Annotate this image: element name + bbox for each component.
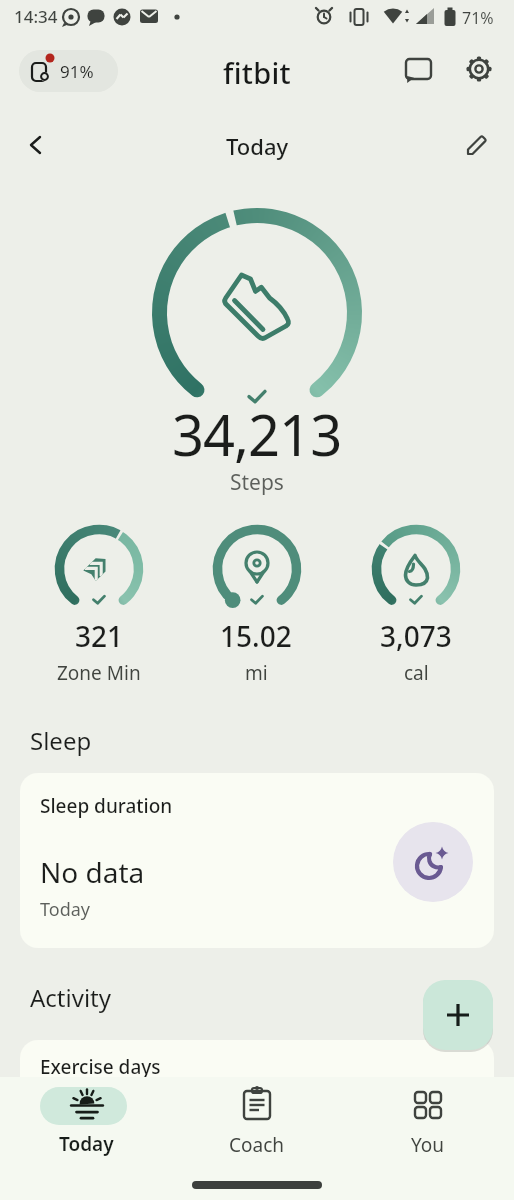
staticText: You (411, 1132, 445, 1158)
staticText: 34,213 (172, 396, 342, 472)
staticText: 15.02 (220, 617, 292, 655)
button[interactable] (462, 130, 492, 160)
staticText: 3,073 (380, 617, 452, 655)
button[interactable] (393, 822, 473, 902)
staticText: Sleep (30, 724, 92, 757)
staticText: Zone Min (57, 660, 141, 686)
button[interactable] (22, 131, 50, 159)
staticText: mi (245, 660, 268, 686)
button[interactable] (40, 1087, 132, 1167)
staticText: 14:34 (14, 5, 58, 28)
button[interactable] (460, 52, 498, 90)
staticText: 321 (75, 617, 124, 655)
button[interactable] (211, 1077, 303, 1163)
button[interactable] (382, 1077, 474, 1163)
staticText: No data (40, 853, 145, 891)
staticText: 91% (60, 60, 94, 83)
staticText: Steps (230, 468, 284, 497)
staticText: Coach (229, 1132, 285, 1158)
button[interactable] (399, 52, 437, 90)
button[interactable]: 91% (19, 50, 118, 92)
staticText: Today (59, 1131, 114, 1157)
staticText: Today (226, 131, 289, 161)
button[interactable] (423, 980, 493, 1050)
button[interactable]: Sleep duration (20, 773, 494, 948)
staticText: Sleep duration (40, 793, 173, 819)
staticText: 71% (462, 7, 494, 29)
button[interactable]: Exercise days (20, 1040, 494, 1090)
staticText: cal (404, 660, 429, 686)
staticText: Activity (30, 981, 111, 1014)
staticText: fitbit (223, 53, 292, 92)
staticText: Exercise days (40, 1054, 161, 1080)
staticText: Today (40, 897, 90, 922)
